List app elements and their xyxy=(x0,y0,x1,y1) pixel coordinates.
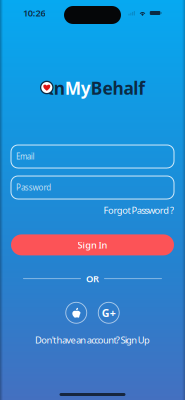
button[interactable]: Sign in with Google xyxy=(98,302,120,324)
staticText: OR xyxy=(86,272,99,285)
staticText: Forgot Password ? xyxy=(104,204,174,216)
button[interactable]: Don't have an account? Sign Up xyxy=(35,333,150,347)
staticText: Email xyxy=(16,151,35,162)
staticText: n xyxy=(54,76,65,99)
staticText: My xyxy=(65,76,91,99)
staticText: Behalf xyxy=(91,76,145,99)
staticText: Don't have an account? Sign Up xyxy=(35,334,150,346)
staticText: G+ xyxy=(102,306,116,320)
button[interactable]: Forgot Password ? xyxy=(104,203,174,217)
button[interactable]: Sign in with Apple xyxy=(65,302,87,324)
staticText: Password xyxy=(16,182,51,193)
staticText: Sign In xyxy=(78,239,107,251)
button[interactable]: Sign In xyxy=(11,234,174,255)
staticText: 10:26 xyxy=(23,7,45,19)
